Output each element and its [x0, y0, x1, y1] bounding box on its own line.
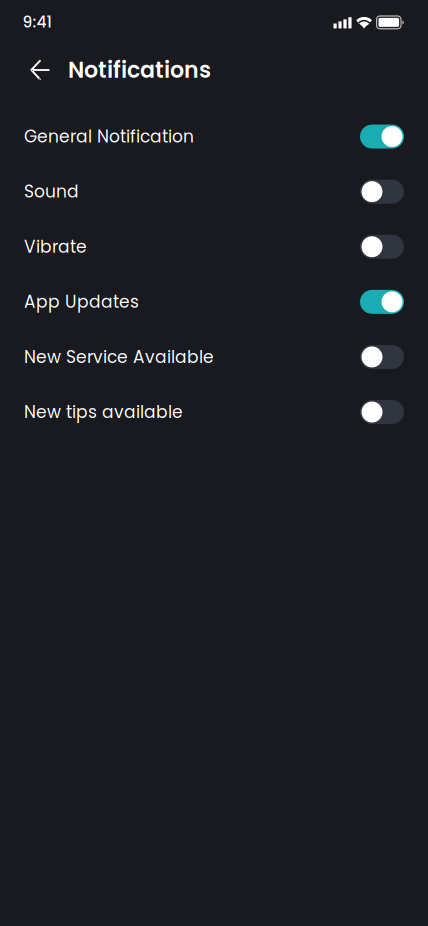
button[interactable]: New tips available: [0, 384, 428, 440]
staticText: Notifications: [68, 54, 211, 85]
staticText: 9:41: [22, 11, 51, 33]
staticText: Vibrate: [24, 235, 87, 259]
button[interactable]: Vibrate: [0, 219, 428, 274]
button[interactable]: Sound: [0, 164, 428, 219]
staticText: General Notification: [24, 125, 194, 148]
button[interactable]: Back: [18, 48, 62, 92]
staticText: App Updates: [24, 290, 139, 314]
staticText: New Service Available: [24, 345, 214, 369]
button[interactable]: General Notification: [0, 109, 428, 164]
button[interactable]: New Service Available: [0, 329, 428, 384]
staticText: Sound: [24, 180, 79, 204]
staticText: New tips available: [24, 400, 183, 424]
button[interactable]: App Updates: [0, 274, 428, 329]
